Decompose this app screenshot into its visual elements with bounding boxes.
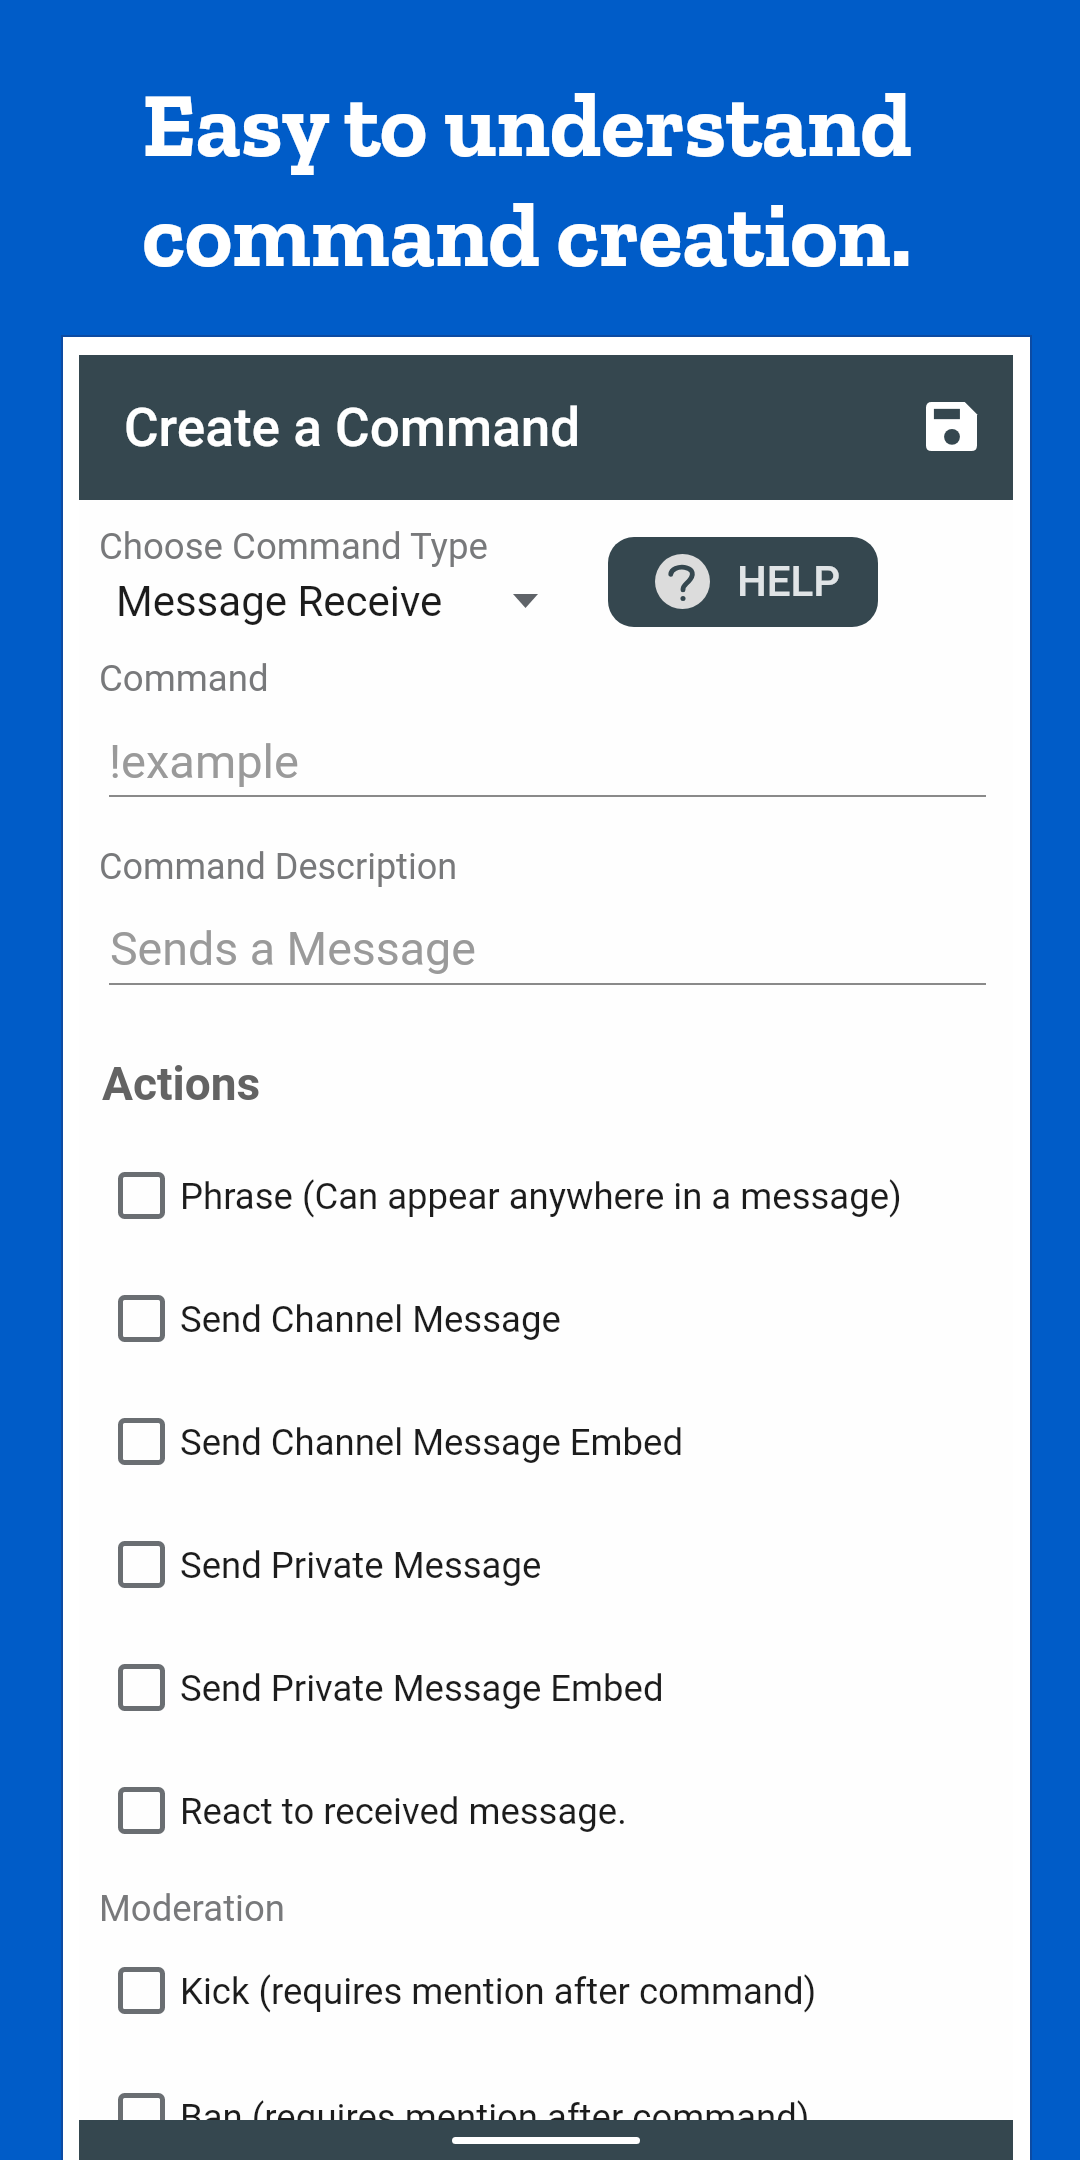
staticText: Send Channel Message Embed <box>180 1421 683 1464</box>
staticText: Moderation <box>99 1887 285 1930</box>
button[interactable]: Send Private Message <box>100 1509 1006 1621</box>
staticText: !example <box>109 734 299 789</box>
button[interactable]: React to received message. <box>100 1755 1006 1867</box>
staticText: Easy to understand command creation. <box>142 71 912 289</box>
staticText: Command Description <box>99 846 458 888</box>
button[interactable]: Phrase (Can appear anywhere in a message… <box>100 1140 1006 1252</box>
staticText: HELP <box>737 557 841 606</box>
staticText: Sends a Message <box>110 922 476 976</box>
button[interactable]: Send Channel Message Embed <box>100 1386 1006 1498</box>
button[interactable]: Send Private Message Embed <box>100 1632 1006 1744</box>
staticText: Phrase (Can appear anywhere in a message… <box>180 1175 902 1218</box>
staticText: Choose Command Type <box>99 525 488 568</box>
staticText: Message Receive <box>116 577 443 626</box>
button[interactable]: Kick (requires mention after command) <box>100 1935 1006 2047</box>
staticText: Send Private Message Embed <box>180 1667 664 1710</box>
staticText: Send Channel Message <box>180 1298 561 1341</box>
button[interactable]: HELP <box>608 537 878 627</box>
staticText: Command <box>99 657 269 700</box>
button[interactable]: Save <box>910 385 992 467</box>
staticText: React to received message. <box>180 1790 627 1833</box>
staticText: Create a Command <box>124 397 581 459</box>
staticText: Ban (requires mention after command) <box>180 2096 810 2139</box>
staticText: Kick (requires mention after command) <box>180 1970 817 2013</box>
staticText: Send Private Message <box>180 1544 542 1587</box>
staticText: Actions <box>102 1057 261 1111</box>
button[interactable]: Ban (requires mention after command) <box>100 2061 1006 2160</box>
button[interactable]: Send Channel Message <box>100 1263 1006 1375</box>
